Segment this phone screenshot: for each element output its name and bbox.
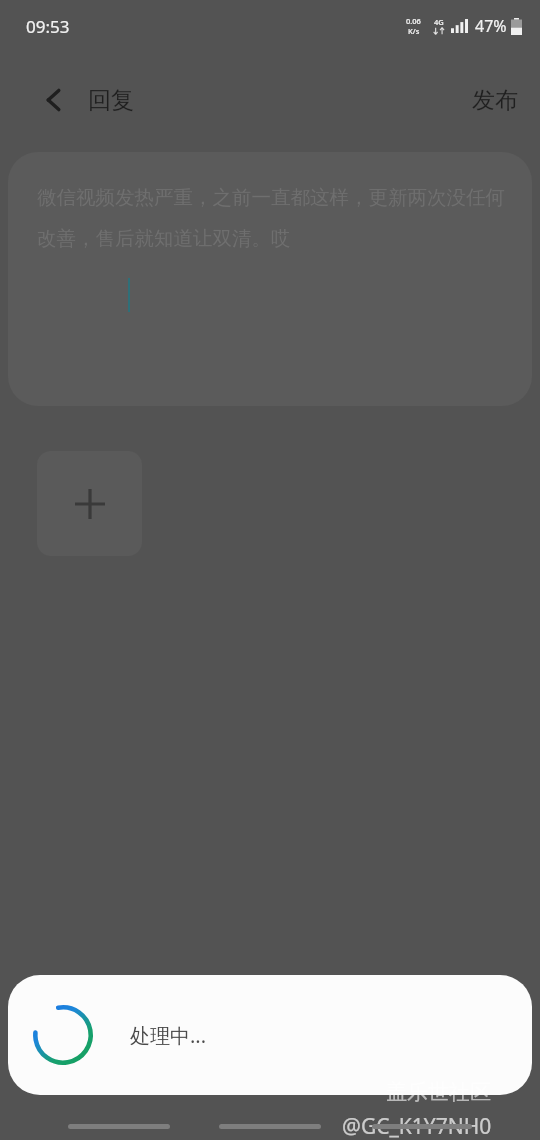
- staticText: 回复: [88, 86, 134, 115]
- staticText: 0.06: [406, 16, 421, 26]
- button[interactable]: Recents: [68, 1124, 170, 1129]
- staticText: @GC_K1Y7NH0: [342, 1112, 492, 1140]
- button[interactable]: Home: [219, 1124, 321, 1129]
- staticText: 4G: [434, 17, 444, 27]
- button[interactable]: 处理中...: [8, 975, 532, 1095]
- staticText: 盖乐世社区: [386, 1079, 491, 1105]
- button[interactable]: Add image: [37, 451, 142, 556]
- staticText: K/s: [408, 26, 420, 36]
- staticText: 处理中...: [130, 1022, 207, 1049]
- button[interactable]: Back: [22, 68, 86, 132]
- button[interactable]: 发布: [450, 74, 540, 127]
- button[interactable]: Back: [372, 1124, 472, 1129]
- staticText: 发布: [472, 86, 518, 115]
- staticText: 微信视频发热严重，之前一直都这样，更新两次没任何改善，售后就知道让双清。哎: [37, 185, 507, 251]
- staticText: 47%: [475, 15, 507, 37]
- staticText: 09:53: [26, 15, 70, 38]
